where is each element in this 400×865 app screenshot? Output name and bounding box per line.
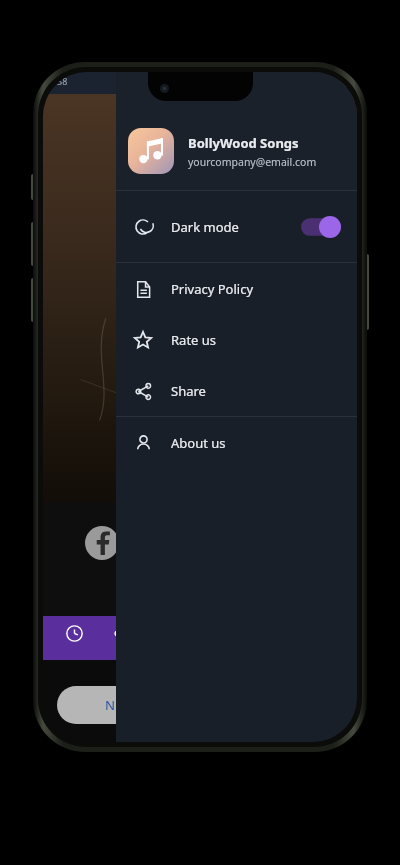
staticText: 58 [57,75,68,87]
button[interactable]: Rate us [116,314,357,365]
button[interactable]: Share [116,365,357,416]
button[interactable]: Privacy Policy [116,263,357,314]
staticText: yourcompany@email.com [188,155,317,169]
staticText: Dark mode [171,218,239,236]
staticText: LTE ⋯ 50% [306,78,347,89]
staticText: About us [171,434,226,452]
button[interactable]: Dark mode toggle [301,216,341,238]
button[interactable]: BollyWood Songs [116,72,357,190]
button[interactable]: Facebook [85,526,119,560]
staticText: BollyWood Songs [188,134,299,152]
button[interactable]: Dark mode [116,191,357,262]
staticText: Share [171,382,206,400]
button[interactable]: Share [105,616,139,650]
staticText: Privacy Policy [171,280,254,298]
staticText: Nice job! [105,696,159,714]
staticText: Rate us [171,331,217,349]
button[interactable]: About us [116,417,357,468]
button[interactable]: History [57,616,91,650]
